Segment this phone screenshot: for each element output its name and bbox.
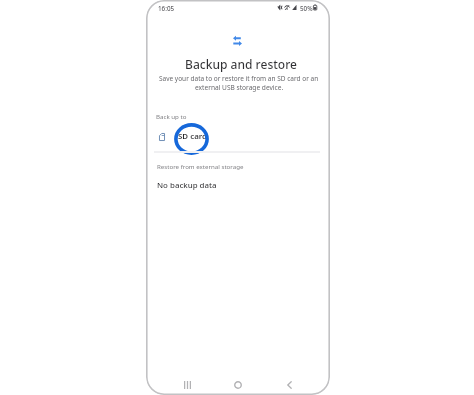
button[interactable]: Home bbox=[226, 375, 250, 395]
staticText: Backup and restore bbox=[185, 56, 297, 72]
button[interactable]: SD card bbox=[147, 126, 327, 148]
staticText: Save your data to or restore it from an … bbox=[159, 74, 319, 83]
staticText: 50% bbox=[300, 4, 313, 13]
button[interactable]: Recents bbox=[175, 375, 199, 395]
staticText: external USB storage device. bbox=[195, 83, 284, 92]
button[interactable]: Back bbox=[277, 375, 301, 395]
staticText: 16:05 bbox=[158, 4, 175, 13]
staticText: Restore from external storage bbox=[157, 162, 244, 170]
staticText: SD card bbox=[178, 131, 207, 142]
staticText: Back up to bbox=[156, 112, 187, 120]
staticText: No backup data bbox=[157, 180, 217, 191]
